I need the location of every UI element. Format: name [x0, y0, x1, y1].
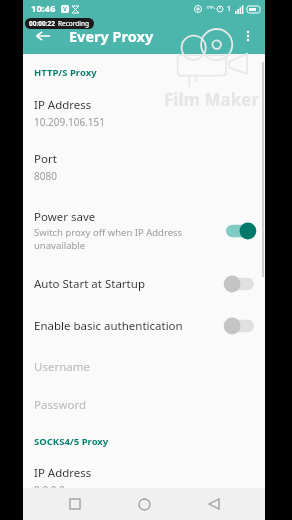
- staticText: SOCKS4/5 Proxy: [34, 435, 109, 448]
- staticText: Port: [34, 151, 57, 167]
- staticText: Enable basic authentication: [34, 318, 223, 334]
- button[interactable]: Back: [29, 22, 57, 50]
- staticText: Password: [34, 397, 87, 413]
- staticText: Every Proxy: [69, 26, 154, 46]
- staticText: IP Address: [34, 97, 92, 113]
- button[interactable]: Home: [126, 488, 162, 520]
- button[interactable]: Power save: [34, 209, 257, 252]
- button[interactable]: [223, 274, 257, 294]
- button[interactable]: Recents: [57, 488, 93, 520]
- button[interactable]: Auto Start at Startup: [34, 274, 257, 294]
- staticText: Auto Start at Startup: [34, 276, 223, 292]
- staticText: HTTP/S Proxy: [34, 66, 97, 79]
- button[interactable]: IP Address: [34, 465, 257, 488]
- button[interactable]: More options: [234, 22, 262, 50]
- button[interactable]: [223, 316, 257, 336]
- staticText: Recording: [58, 19, 90, 28]
- staticText: Power save: [34, 209, 96, 225]
- staticText: V: [63, 5, 67, 13]
- staticText: Switch proxy off when IP Address: [34, 226, 183, 239]
- staticText: 10:46: [31, 2, 56, 15]
- button[interactable]: IP Address: [34, 97, 257, 129]
- button[interactable]: Enable basic authentication: [34, 316, 257, 336]
- staticText: 0.0.0.0: [34, 483, 65, 488]
- button[interactable]: [223, 221, 257, 241]
- staticText: Username: [34, 359, 90, 375]
- staticText: 00:00:22: [29, 19, 55, 28]
- staticText: 10.209.106.151: [34, 115, 105, 129]
- staticText: unavailable: [34, 239, 86, 252]
- button[interactable]: Password: [34, 397, 257, 413]
- button[interactable]: Port: [34, 151, 257, 183]
- staticText: Film Maker: [164, 88, 259, 111]
- button[interactable]: Back: [196, 488, 232, 520]
- staticText: IP Address: [34, 465, 92, 481]
- staticText: 8080: [34, 169, 57, 183]
- button[interactable]: Username: [34, 359, 257, 375]
- staticText: 1: [227, 4, 232, 14]
